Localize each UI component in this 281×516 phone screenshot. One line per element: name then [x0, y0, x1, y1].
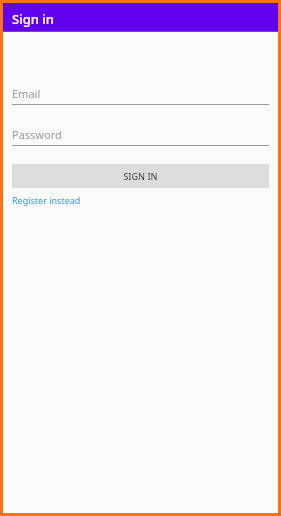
staticText: Sign in: [12, 10, 54, 28]
button[interactable]: Register instead: [12, 192, 81, 208]
staticText: Register instead: [12, 194, 81, 206]
staticText: Email: [12, 86, 41, 101]
staticText: SIGN IN: [123, 170, 158, 182]
staticText: Password: [12, 127, 62, 142]
button[interactable]: Email: [12, 85, 269, 105]
button[interactable]: Password: [12, 126, 269, 146]
button[interactable]: SIGN IN: [12, 164, 269, 188]
